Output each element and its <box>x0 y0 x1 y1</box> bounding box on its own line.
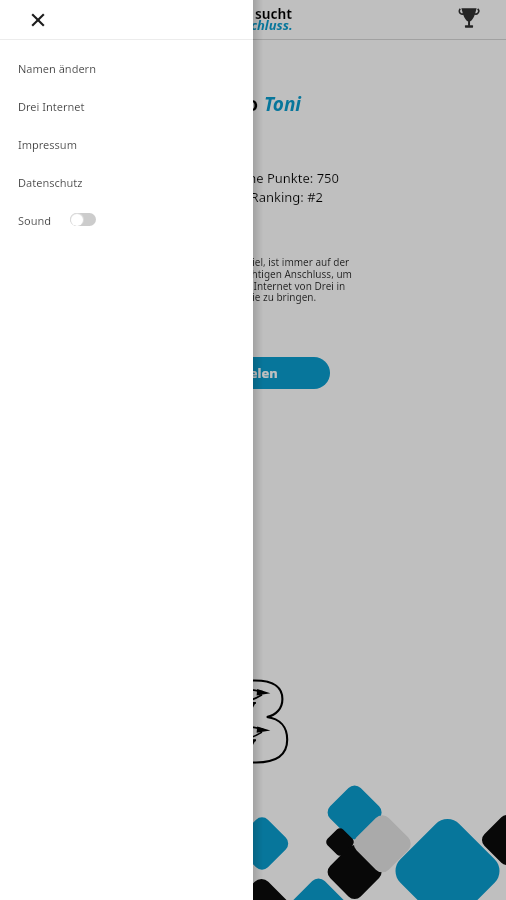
button[interactable]: Impressum <box>0 125 253 163</box>
staticText: Sound <box>18 213 52 228</box>
staticText: Hallo <box>209 91 264 117</box>
button[interactable]: Ranking <box>457 5 481 29</box>
staticText: Impressum <box>18 137 77 152</box>
staticText: Namen ändern <box>18 61 96 76</box>
staticText: die ganze Familie zu bringen. <box>179 290 317 304</box>
button[interactable]: Datenschutz <box>0 163 253 201</box>
staticText: Wer Drei Spiel, ist immer auf der <box>197 255 350 269</box>
staticText: Jetzt spielen <box>198 364 278 382</box>
staticText: anschluss. <box>229 16 293 34</box>
button[interactable]: Jetzt spielen <box>146 357 330 389</box>
button[interactable]: Drei Internet <box>0 87 253 125</box>
button[interactable]: Namen ändern <box>0 49 253 87</box>
staticText: Deine Punkte: 750 <box>228 169 339 187</box>
button[interactable]: Close menu <box>27 9 49 31</box>
staticText: Dein Ranking: #2 <box>219 188 324 206</box>
staticText: sucht <box>255 5 293 23</box>
staticText: Datenschutz <box>18 175 83 190</box>
staticText: das schnellste Internet von Drei in <box>185 279 346 293</box>
staticText: Toni <box>264 91 302 117</box>
staticText: Drei Internet <box>18 99 85 114</box>
staticText: Suche nach dem richtigen Anschluss, um <box>160 267 352 281</box>
button[interactable]: Sound <box>0 201 253 239</box>
